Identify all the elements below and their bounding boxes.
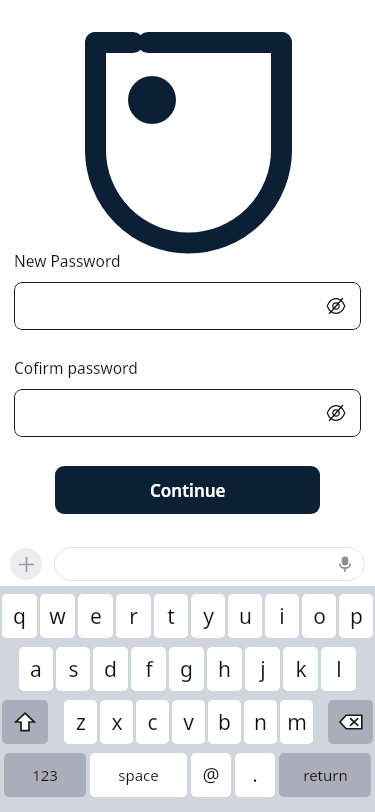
staticText: Cofirm password (14, 357, 138, 378)
staticText: l (336, 655, 342, 684)
button[interactable]: Show password (325, 295, 347, 317)
button[interactable]: p (339, 594, 373, 638)
staticText: p (350, 602, 363, 631)
button[interactable]: Show password (14, 389, 361, 437)
button[interactable]: Show password (325, 402, 347, 424)
button[interactable]: t (154, 594, 188, 638)
button[interactable]: r (116, 594, 151, 638)
button[interactable]: Continue (55, 466, 320, 514)
button[interactable]: b (208, 700, 241, 744)
staticText: e (90, 602, 102, 631)
staticText: return (303, 765, 348, 785)
button[interactable]: h (207, 647, 242, 691)
staticText: @ (202, 762, 220, 788)
staticText: c (147, 708, 158, 737)
staticText: 123 (32, 765, 58, 785)
staticText: t (167, 602, 175, 631)
staticText: v (183, 708, 194, 737)
button[interactable]: Show password (14, 282, 361, 330)
staticText: d (104, 655, 117, 684)
button[interactable]: l (321, 647, 356, 691)
button[interactable]: d (93, 647, 128, 691)
staticText: n (254, 708, 267, 737)
staticText: j (260, 655, 266, 684)
button[interactable]: Voice input (337, 556, 353, 572)
button[interactable]: z (64, 700, 97, 744)
button[interactable]: x (100, 700, 133, 744)
button[interactable]: return (279, 753, 371, 797)
button[interactable]: k (283, 647, 318, 691)
staticText: y (203, 602, 214, 631)
button[interactable]: . (235, 753, 275, 797)
button[interactable]: @ (191, 753, 231, 797)
button[interactable]: g (169, 647, 204, 691)
staticText: w (49, 602, 66, 631)
button[interactable]: i (265, 594, 299, 638)
button[interactable]: u (228, 594, 262, 638)
button[interactable]: 123 (4, 753, 86, 797)
staticText: . (252, 762, 258, 788)
button[interactable]: Backspace (328, 700, 373, 744)
staticText: k (295, 655, 307, 684)
button[interactable]: j (245, 647, 280, 691)
staticText: u (239, 602, 252, 631)
staticText: f (145, 655, 153, 684)
button[interactable]: w (40, 594, 75, 638)
button[interactable]: Add (10, 548, 42, 580)
staticText: Continue (150, 479, 226, 502)
button[interactable]: e (78, 594, 113, 638)
button[interactable]: o (302, 594, 336, 638)
button[interactable]: s (56, 647, 90, 691)
staticText: r (129, 602, 138, 631)
staticText: q (13, 602, 26, 631)
staticText: s (68, 655, 79, 684)
button[interactable]: q (2, 594, 37, 638)
staticText: space (118, 765, 159, 785)
button[interactable]: n (244, 700, 277, 744)
staticText: o (313, 602, 326, 631)
staticText: x (111, 708, 123, 737)
staticText: i (279, 602, 285, 631)
staticText: b (218, 708, 231, 737)
staticText: m (287, 708, 307, 737)
button[interactable]: y (191, 594, 225, 638)
button[interactable]: f (131, 647, 166, 691)
button[interactable]: c (136, 700, 169, 744)
staticText: h (218, 655, 231, 684)
staticText: g (180, 655, 193, 684)
staticText: a (30, 655, 42, 684)
staticText: New Password (14, 250, 121, 271)
button[interactable]: a (19, 647, 53, 691)
button[interactable]: Voice input (54, 547, 365, 581)
button[interactable]: space (90, 753, 187, 797)
button[interactable]: m (280, 700, 313, 744)
staticText: z (76, 708, 86, 737)
button[interactable]: v (172, 700, 205, 744)
button[interactable]: Shift (2, 700, 48, 744)
